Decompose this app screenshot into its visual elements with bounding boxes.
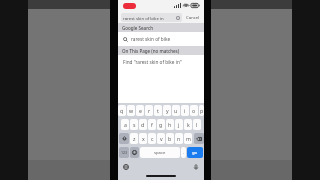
button[interactable]: g [157, 119, 165, 130]
button[interactable]: rarest skin of bike in [121, 13, 182, 22]
staticText: b [168, 135, 172, 142]
staticText: c [151, 135, 154, 142]
staticText: j [178, 121, 180, 128]
staticText: z [133, 135, 136, 142]
staticText: h [168, 121, 172, 128]
staticText: space [154, 150, 166, 156]
staticText: a [124, 121, 127, 128]
staticText: e [139, 107, 142, 114]
button[interactable]: t [154, 105, 162, 116]
button[interactable]: r [145, 105, 153, 116]
button[interactable]: x [139, 133, 147, 144]
staticText: p [200, 107, 204, 114]
button[interactable]: u [172, 105, 180, 116]
button[interactable]: d [139, 119, 147, 130]
button[interactable]: c [148, 133, 156, 144]
button[interactable]: k [184, 119, 192, 130]
other: Clear text [176, 16, 180, 20]
staticText: r [148, 107, 151, 114]
button[interactable]: go [187, 147, 203, 158]
staticText: Google Search [122, 25, 154, 31]
button[interactable]: z [130, 133, 138, 144]
staticText: rarest skin of bike in [123, 15, 176, 21]
button[interactable]: Backspace [194, 133, 204, 144]
button[interactable]: n [175, 133, 183, 144]
button[interactable]: o [190, 105, 198, 116]
staticText: w [129, 107, 134, 114]
staticText: q [120, 107, 124, 114]
staticText: x [142, 135, 145, 142]
button[interactable]: Shift [119, 133, 129, 144]
button[interactable]: Cancel [185, 14, 201, 20]
staticText: d [141, 121, 145, 128]
button[interactable]: Switch keyboard [123, 164, 129, 170]
button[interactable]: h [166, 119, 174, 130]
staticText: go [192, 150, 198, 156]
button[interactable]: l [193, 119, 201, 130]
button[interactable]: y [163, 105, 171, 116]
button[interactable]: Numbers [119, 147, 129, 158]
staticText: l [196, 121, 198, 128]
staticText: k [187, 121, 190, 128]
staticText: Find "rarest skin of bike in" [123, 59, 182, 65]
button[interactable]: Emoji [130, 147, 139, 158]
staticText: o [192, 107, 196, 114]
button[interactable]: b [166, 133, 174, 144]
button[interactable]: Dictation [193, 164, 199, 170]
staticText: On This Page (no matches) [122, 48, 180, 54]
button[interactable]: j [175, 119, 183, 130]
staticText: m [186, 135, 191, 142]
button[interactable]: v [157, 133, 165, 144]
staticText: rarest skin of bike [131, 36, 171, 42]
staticText: i [184, 107, 186, 114]
button[interactable]: m [184, 133, 192, 144]
staticText: y [166, 107, 169, 114]
button[interactable]: space [140, 147, 180, 158]
staticText: Cancel [186, 14, 200, 20]
button[interactable]: s [130, 119, 138, 130]
button[interactable]: Find "rarest skin of bike in" [118, 55, 204, 69]
staticText: s [133, 121, 136, 128]
button[interactable]: p [199, 105, 204, 116]
button[interactable]: rarest skin of bike [118, 32, 204, 46]
staticText: . [183, 150, 185, 156]
staticText: n [177, 135, 181, 142]
button[interactable]: a [121, 119, 129, 130]
staticText: t [157, 107, 159, 114]
staticText: 123 [121, 150, 128, 155]
button[interactable]: q [118, 105, 126, 116]
staticText: g [159, 121, 163, 128]
staticText: u [174, 107, 178, 114]
button[interactable]: e [136, 105, 144, 116]
button[interactable]: f [148, 119, 156, 130]
button[interactable]: . [181, 147, 186, 158]
button[interactable]: w [127, 105, 135, 116]
staticText: f [151, 121, 153, 128]
button[interactable]: i [181, 105, 189, 116]
staticText: v [160, 135, 163, 142]
